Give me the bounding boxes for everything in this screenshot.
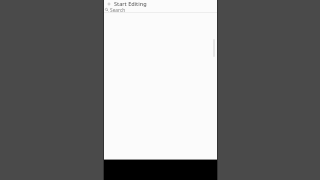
staticText: Search — [110, 7, 126, 12]
button[interactable]: Search — [104, 7, 217, 12]
staticText: Start Editing — [114, 0, 147, 7]
button[interactable]: Start Editing — [104, 0, 217, 7]
